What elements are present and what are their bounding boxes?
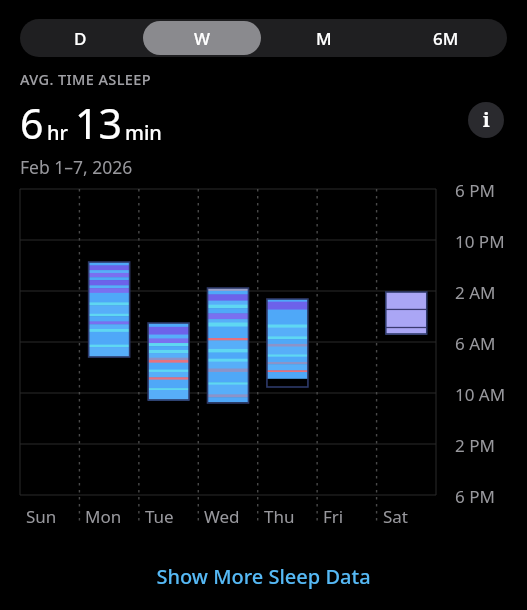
staticText: Show More Sleep Data [156,563,371,590]
staticText: Mon [85,505,122,528]
staticText: 6M [433,27,459,50]
staticText: D [74,27,87,50]
button[interactable]: Show More Sleep Data [0,559,527,593]
staticText: Fri [323,505,344,528]
staticText: 2 AM [455,281,496,304]
staticText: i [483,107,490,133]
staticText: 2 PM [455,434,495,457]
staticText: min [125,119,162,146]
staticText: Wed [204,505,240,528]
button[interactable]: D [22,21,139,55]
staticText: 6 AM [455,332,496,355]
staticText: 6 [20,95,44,151]
staticText: 6 PM [455,179,495,202]
staticText: 10 AM [455,383,506,406]
staticText: 6 PM [455,485,495,508]
button[interactable]: W [143,21,261,55]
staticText: 10 PM [455,230,505,253]
staticText: Tue [145,505,174,528]
staticText: AVG. TIME ASLEEP [20,69,151,89]
staticText: Feb 1–7, 2026 [20,155,133,179]
staticText: Sat [383,505,409,528]
staticText: M [316,27,332,50]
button[interactable]: 6M [387,21,505,55]
staticText: 13 [75,95,122,151]
staticText: W [194,27,210,50]
button[interactable]: Information [468,102,504,138]
staticText: Sun [26,505,57,528]
staticText: Thu [264,505,295,528]
staticText: hr [47,119,68,146]
button[interactable]: M [265,21,383,55]
